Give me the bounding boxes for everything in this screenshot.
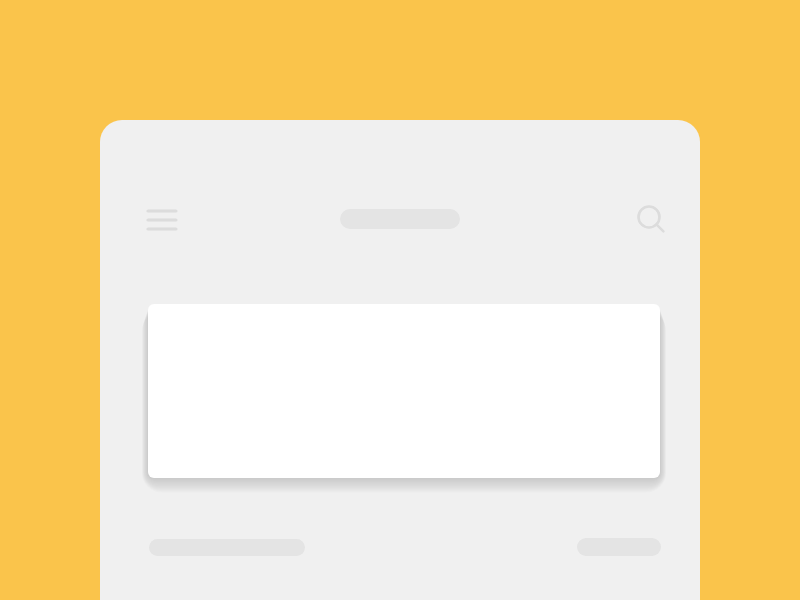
button[interactable]: Open navigation menu xyxy=(138,198,186,242)
button[interactable]: Search xyxy=(628,196,672,240)
